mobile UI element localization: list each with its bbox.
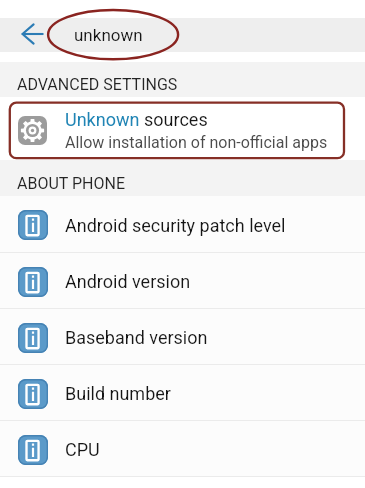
button[interactable]: ABOUT PHONE xyxy=(0,160,365,196)
button[interactable]: Baseband version xyxy=(0,309,365,365)
staticText: ADVANCED SETTINGS xyxy=(17,75,178,94)
button[interactable]: Back xyxy=(9,18,55,52)
button[interactable]: ADVANCED SETTINGS xyxy=(0,62,365,97)
staticText: Build number xyxy=(65,383,171,404)
staticText: CPU xyxy=(65,439,100,460)
button[interactable]: Unknown xyxy=(0,97,365,160)
staticText: Android security patch level xyxy=(65,215,286,236)
button[interactable]: Build number xyxy=(0,365,365,421)
staticText: Allow installation of non-official apps xyxy=(65,133,328,152)
staticText: Baseband version xyxy=(65,327,208,348)
staticText: unknown xyxy=(74,25,143,45)
staticText: Unknown xyxy=(65,109,144,130)
button[interactable]: CPU xyxy=(0,421,365,477)
staticText: ABOUT PHONE xyxy=(17,174,126,193)
button[interactable]: Back xyxy=(0,18,365,52)
button[interactable]: Android security patch level xyxy=(0,196,365,253)
button[interactable]: Android version xyxy=(0,253,365,309)
staticText: sources xyxy=(144,109,208,130)
staticText: Android version xyxy=(65,271,191,292)
